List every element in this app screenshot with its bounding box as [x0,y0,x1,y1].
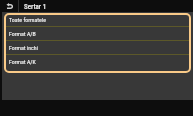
staticText: Format A/B [9,31,36,38]
button[interactable]: Format A/K [4,55,191,68]
button[interactable]: Toate formatele [4,13,191,26]
button[interactable]: Format inchi [4,41,191,54]
staticText: Toate formatele [9,17,46,24]
staticText: Sertar 1 [24,3,47,11]
staticText: Format A/K [9,59,36,66]
button[interactable]: Format A/B [4,27,191,40]
button[interactable]: Back [0,0,18,12]
staticText: Format inchi [9,45,38,52]
